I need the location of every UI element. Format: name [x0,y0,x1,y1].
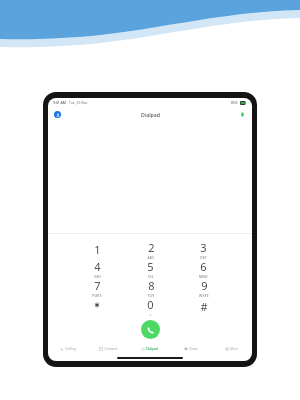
button[interactable]: Call [141,320,160,339]
staticText: Tue, 23 Nov [69,100,88,105]
button[interactable]: Chats [170,342,211,355]
button[interactable]: Dialpad [129,342,170,355]
staticText: GHI [94,275,101,278]
staticText: ABC [147,256,155,259]
staticText: 0 [147,297,154,312]
staticText: DEF [200,256,207,259]
button[interactable]: 6 [177,259,230,278]
button[interactable]: More [211,342,252,355]
staticText: Chats [189,347,198,351]
staticText: 2 [148,240,155,255]
button[interactable]: Call log [48,342,88,355]
staticText: More [230,347,238,351]
button[interactable]: Video call [239,111,246,118]
staticText: Dialpad [141,111,160,118]
staticText: Call log [65,347,76,351]
button[interactable]: 8 [124,278,177,297]
staticText: 8 [148,278,155,293]
button[interactable]: 9 [177,278,230,297]
staticText: JKL [148,275,154,278]
staticText: Contacts [104,347,118,351]
button[interactable]: Contacts [88,342,129,355]
staticText: 3 [200,240,207,255]
button[interactable] [70,297,124,316]
staticText: 4 [94,259,101,274]
staticText: 9:41 AM [53,100,66,105]
button[interactable]: 7 [70,278,124,297]
button[interactable]: 3 [177,240,230,259]
staticText: PQRS [92,294,102,297]
staticText: 7 [94,278,101,293]
staticText: # [200,299,208,314]
staticText: TUV [147,294,155,297]
staticText: WXYZ [199,294,209,297]
staticText: Dialpad [146,347,158,351]
button[interactable]: 0 [124,297,177,316]
button[interactable]: 1 [70,240,124,259]
staticText: 5 [147,259,154,274]
staticText: + [149,313,152,316]
staticText: 9 [201,278,208,293]
button[interactable]: Account [54,111,61,118]
staticText: 86% [231,100,238,105]
staticText: 6 [200,259,207,274]
staticText: 1 [94,242,101,257]
button[interactable]: 4 [70,259,124,278]
button[interactable]: 2 [124,240,177,259]
staticText: MNO [199,275,208,278]
button[interactable]: 5 [124,259,177,278]
button[interactable]: # [177,297,230,316]
